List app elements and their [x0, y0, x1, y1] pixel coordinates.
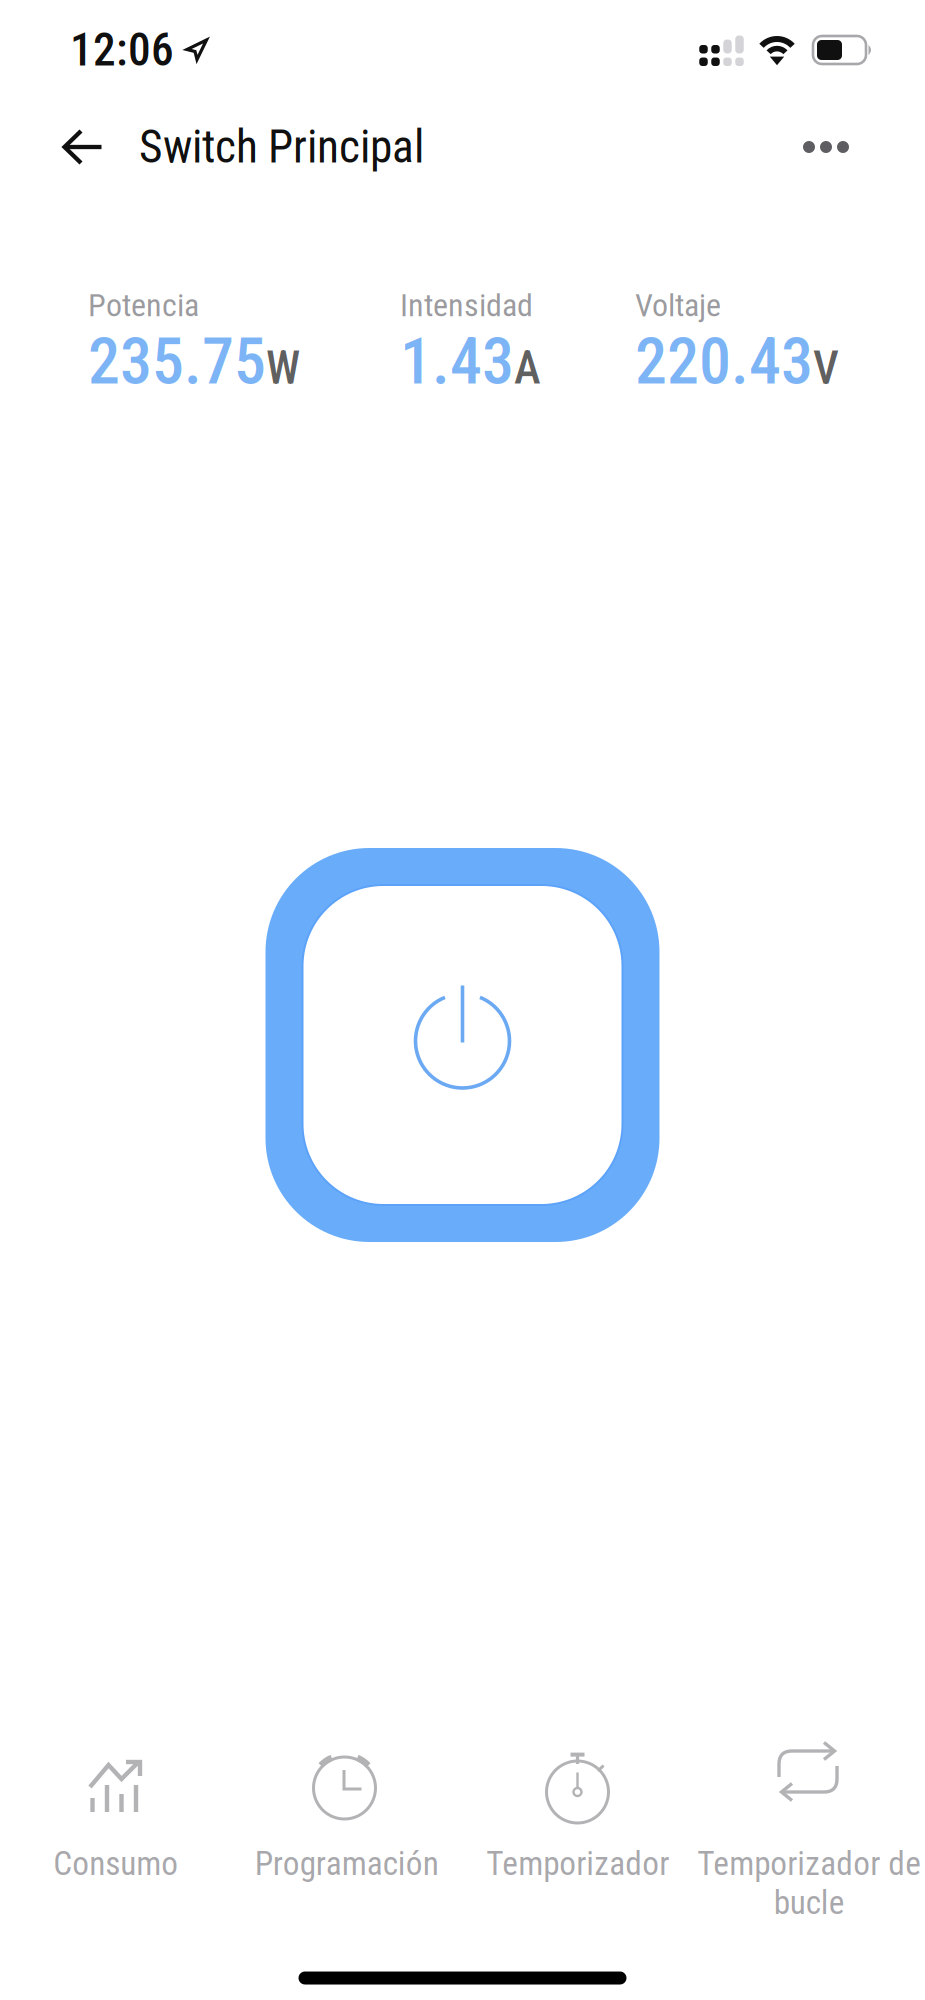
staticText: Temporizador de bucle: [697, 1844, 921, 1922]
staticText: V: [813, 341, 839, 394]
staticText: 220.43: [635, 324, 813, 399]
staticText: Switch Principal: [139, 120, 424, 173]
button[interactable]: Temporizador: [462, 1756, 693, 1970]
staticText: Temporizador: [486, 1844, 669, 1883]
staticText: Consumo: [53, 1844, 178, 1883]
staticText: Potencia: [88, 286, 199, 324]
button[interactable]: Power: [265, 848, 659, 1242]
button[interactable]: Consumo: [0, 1756, 231, 1970]
staticText: A: [514, 341, 541, 394]
button[interactable]: Back: [53, 112, 113, 182]
button[interactable]: More options: [793, 119, 859, 175]
staticText: Intensidad: [400, 286, 533, 324]
staticText: 1.43: [400, 324, 514, 399]
staticText: Voltaje: [635, 286, 721, 324]
staticText: W: [266, 341, 300, 394]
button[interactable]: Temporizador de bucle: [693, 1756, 925, 1970]
staticText: Programación: [254, 1844, 438, 1883]
staticText: 235.75: [88, 324, 266, 399]
staticText: 12:06: [70, 23, 174, 76]
button[interactable]: Programación: [231, 1756, 462, 1970]
